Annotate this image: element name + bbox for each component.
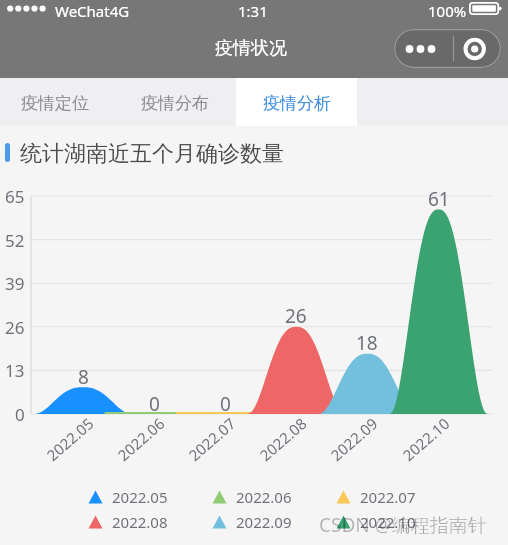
button[interactable]: 疫情分布 bbox=[114, 78, 235, 126]
staticText: 2022.09 bbox=[236, 512, 292, 531]
staticText: 26 bbox=[5, 316, 25, 339]
staticText: WeChat4G bbox=[55, 1, 130, 21]
staticText: 18 bbox=[356, 330, 378, 356]
staticText: 疫情分布 bbox=[141, 93, 209, 114]
staticText: 1:31 bbox=[238, 1, 268, 21]
button[interactable]: 2022.09 bbox=[212, 512, 292, 531]
button[interactable]: 疫情定位 bbox=[0, 78, 115, 126]
button[interactable]: 2022.08 bbox=[88, 512, 168, 531]
staticText: 2022.06 bbox=[236, 487, 292, 506]
staticText: 0 bbox=[15, 403, 25, 426]
staticText: CSDN @编程指南针 bbox=[319, 512, 487, 538]
button[interactable]: 2022.07 bbox=[336, 487, 416, 506]
staticText: 65 bbox=[5, 185, 25, 208]
staticText: 2022.05 bbox=[112, 487, 168, 506]
button[interactable]: 2022.05 bbox=[88, 487, 168, 506]
staticText: 疫情定位 bbox=[21, 93, 89, 114]
staticText: 26 bbox=[285, 303, 307, 329]
staticText: 0 bbox=[220, 391, 231, 417]
staticText: 2022.10 bbox=[360, 512, 416, 531]
button[interactable]: 疫情分析 bbox=[236, 78, 357, 126]
staticText: 2022.08 bbox=[112, 512, 168, 531]
staticText: 100% bbox=[428, 1, 467, 21]
staticText: 2022.10 bbox=[398, 413, 454, 465]
staticText: 52 bbox=[5, 229, 25, 252]
staticText: 2022.09 bbox=[326, 413, 382, 465]
staticText: 2022.05 bbox=[42, 413, 98, 465]
button[interactable]: 2022.10 bbox=[336, 512, 416, 531]
staticText: 39 bbox=[5, 272, 25, 295]
staticText: 2022.08 bbox=[255, 413, 311, 465]
button[interactable]: More options and close mini program bbox=[394, 29, 501, 68]
staticText: 8 bbox=[78, 364, 89, 390]
staticText: 2022.07 bbox=[360, 487, 416, 506]
staticText: 疫情状况 bbox=[215, 37, 287, 60]
staticText: 13 bbox=[5, 359, 25, 382]
staticText: 统计湖南近五个月确诊数量 bbox=[20, 140, 284, 168]
staticText: 疫情分析 bbox=[263, 93, 331, 114]
button[interactable]: 2022.06 bbox=[212, 487, 292, 506]
staticText: 2022.06 bbox=[113, 413, 169, 465]
staticText: 61 bbox=[428, 186, 450, 212]
staticText: 2022.07 bbox=[184, 413, 240, 465]
staticText: 0 bbox=[149, 391, 160, 417]
